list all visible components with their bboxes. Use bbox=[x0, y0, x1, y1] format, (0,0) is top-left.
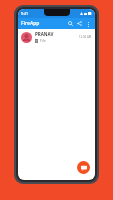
button[interactable]: More options bbox=[84, 20, 92, 28]
staticText: File bbox=[40, 38, 46, 43]
staticText: 12:04 AM bbox=[79, 35, 92, 39]
button[interactable]: PRANAV bbox=[18, 29, 95, 45]
button[interactable]: Search bbox=[66, 19, 75, 28]
button[interactable]: New connection bbox=[75, 19, 84, 28]
staticText: PRANAV bbox=[35, 31, 54, 37]
staticText: FireApp bbox=[21, 20, 40, 27]
staticText: 9:41 bbox=[21, 11, 28, 16]
button[interactable]: New chat bbox=[77, 161, 90, 174]
